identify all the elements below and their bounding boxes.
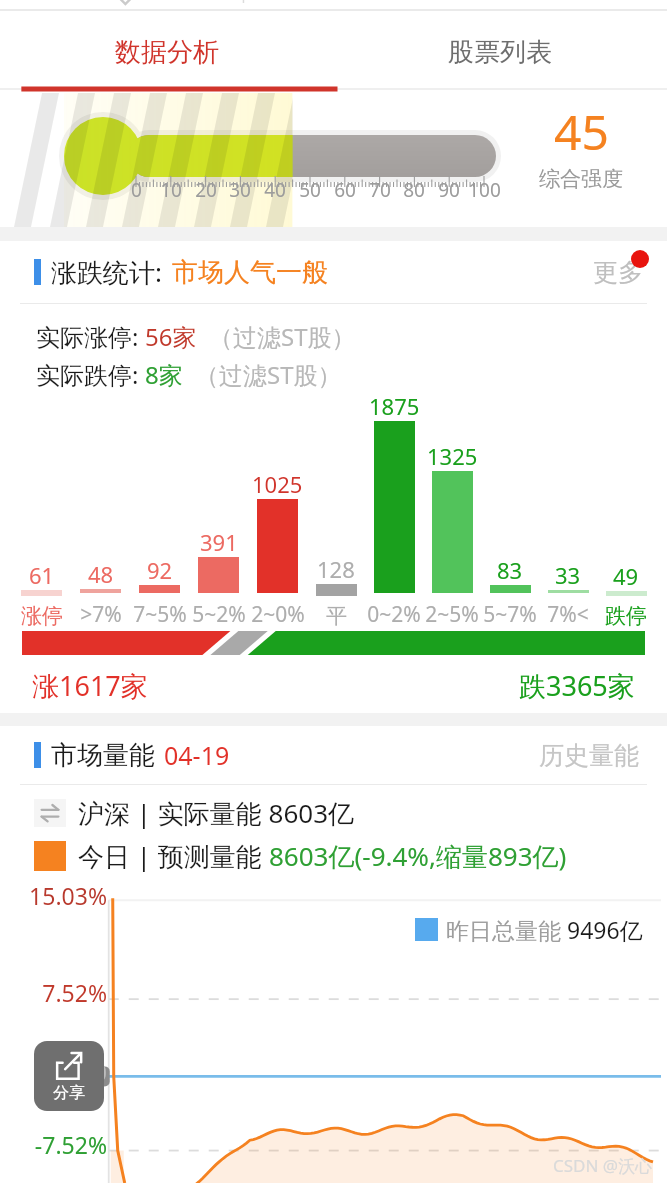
staticText: （过滤ST股） (195, 358, 342, 391)
staticText: 跌3365家 (519, 667, 635, 704)
staticText: 50 (299, 177, 321, 203)
staticText: 综合强度 (539, 166, 623, 192)
staticText: 0 (131, 177, 142, 203)
staticText: 80 (403, 177, 425, 203)
staticText: 昨日总量能 (446, 914, 567, 945)
staticText: 8603亿(-9.4%,缩量893亿) (269, 838, 567, 874)
staticText: >7% (80, 600, 122, 629)
staticText: 48 (88, 559, 114, 589)
staticText: 92 (147, 555, 173, 585)
staticText: 40 (264, 177, 286, 203)
staticText: 128 (317, 554, 355, 584)
staticText: 1025 (252, 469, 303, 499)
staticText: 9496亿 (567, 914, 643, 945)
staticText: 实际跌停: (36, 358, 145, 391)
staticText: 更多 (593, 257, 643, 288)
button[interactable]: 分享 (34, 1041, 104, 1111)
staticText: 涨跌统计: (51, 254, 162, 290)
staticText: 33 (555, 560, 581, 590)
staticText: 1875 (369, 391, 420, 421)
staticText: -7.52% (34, 1129, 107, 1160)
staticText: 历史量能 (539, 740, 639, 771)
staticText: 5~7% (483, 600, 537, 629)
staticText: 61 (29, 560, 55, 590)
button[interactable]: 股票列表 (333, 11, 667, 93)
staticText: 2~5% (425, 600, 479, 629)
staticText: 股票列表 (448, 36, 552, 69)
staticText: 100 (468, 177, 501, 203)
staticText: 10 (160, 177, 182, 203)
staticText: 7~5% (133, 600, 187, 629)
staticText: CSDN @沃心 (553, 1154, 653, 1177)
staticText: 0~2% (367, 600, 421, 629)
staticText: 15.03% (29, 880, 107, 911)
staticText: 90 (438, 177, 460, 203)
staticText: （过滤ST股） (209, 320, 356, 353)
staticText: 7.52% (42, 977, 107, 1008)
staticText: 20 (195, 177, 217, 203)
staticText: 实际涨停: (36, 320, 145, 353)
staticText: 5~2% (192, 600, 246, 629)
staticText: 30 (229, 177, 251, 203)
staticText: 今日 | 预测量能 (78, 838, 269, 874)
staticText: 49 (613, 561, 639, 591)
staticText: 市场量能 (51, 739, 155, 772)
staticText: 市场人气一般 (172, 256, 328, 289)
staticText: 2~0% (251, 600, 305, 629)
button[interactable]: 数据分析 (0, 11, 333, 93)
staticText: 跌停 (605, 603, 647, 629)
staticText: 平 (326, 603, 347, 629)
staticText: 分享 (53, 1083, 85, 1103)
staticText: 数据分析 (115, 36, 219, 69)
staticText: 391 (200, 527, 238, 557)
staticText: 7%< (547, 600, 589, 629)
button[interactable]: 更多 (585, 249, 651, 296)
staticText: 56家 (145, 320, 197, 353)
staticText: 沪深 | 实际量能 8603亿 (78, 795, 355, 831)
staticText: 04-19 (164, 738, 230, 772)
staticText: 0 (93, 1056, 107, 1087)
staticText: 1325 (427, 441, 478, 471)
staticText: 45 (554, 99, 609, 164)
staticText: 60 (334, 177, 356, 203)
staticText: 涨停 (21, 603, 63, 629)
staticText: 8家 (145, 358, 183, 391)
staticText: 涨1617家 (32, 667, 148, 704)
button[interactable]: 历史量能 (533, 734, 645, 777)
staticText: 83 (497, 555, 523, 585)
button[interactable]: 切换市场 (34, 799, 66, 827)
staticText: 70 (369, 177, 391, 203)
